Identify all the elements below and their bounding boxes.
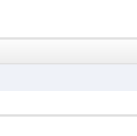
button[interactable]: List item (0, 40, 137, 63)
